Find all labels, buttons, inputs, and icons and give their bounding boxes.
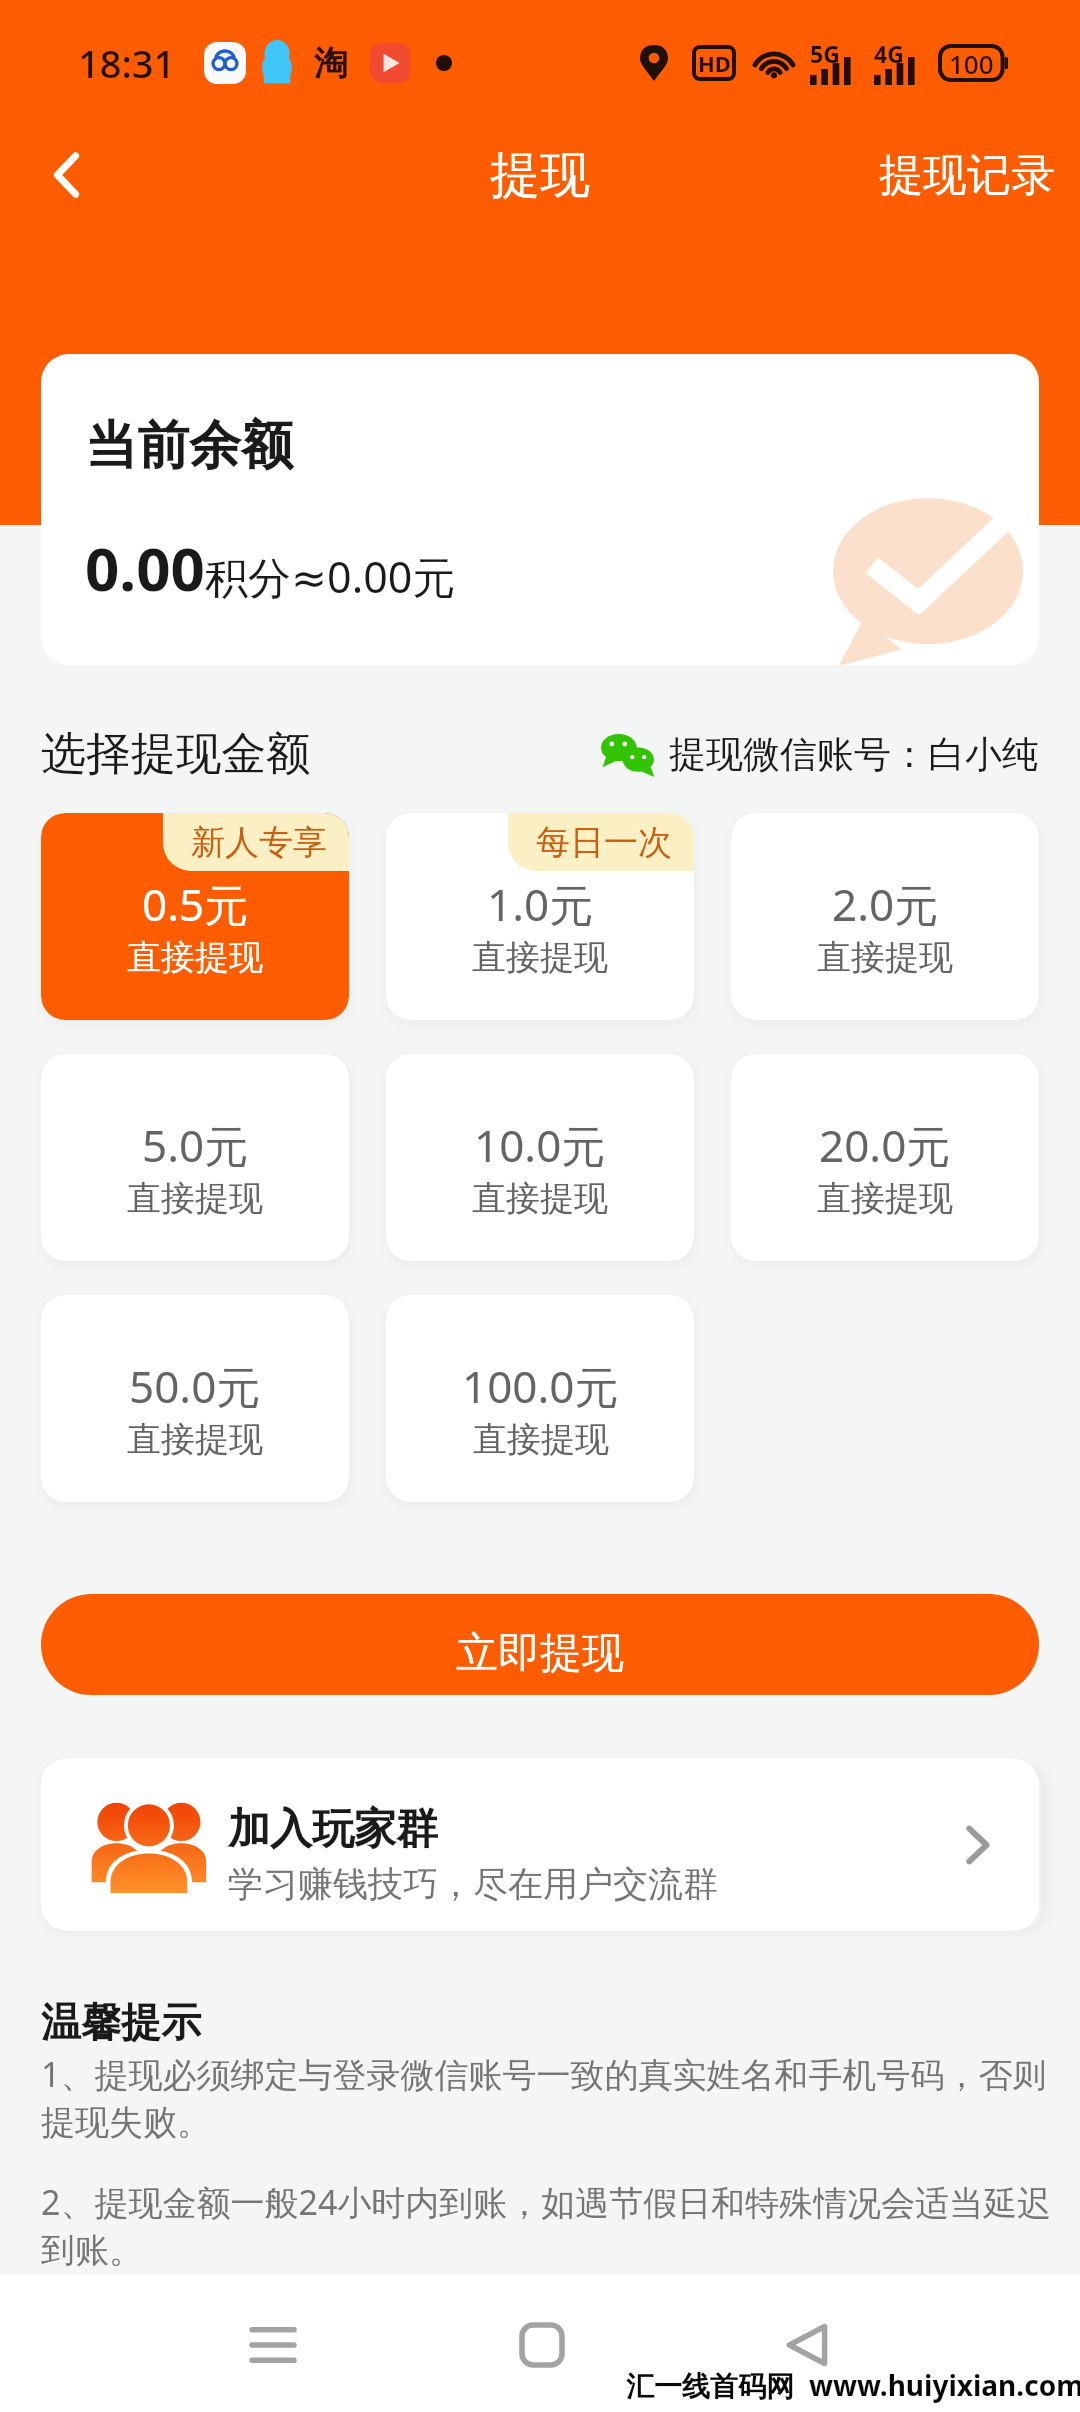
button[interactable]: 每日一次: [386, 813, 694, 1020]
staticText: 新人专享: [191, 821, 327, 864]
button[interactable]: 10.0元: [386, 1054, 694, 1261]
staticText: www.huiyixian.com: [809, 2366, 1080, 2404]
button[interactable]: 50.0元: [41, 1295, 349, 1502]
button[interactable]: 新人专享: [41, 813, 349, 1020]
staticText: 10.0元: [474, 1115, 606, 1175]
staticText: 立即提现: [456, 1627, 624, 1680]
staticText: 5G: [810, 38, 840, 69]
staticText: 提现微信账号：白小纯: [669, 731, 1039, 778]
staticText: 100: [949, 46, 994, 80]
staticText: 1、提现必须绑定与登录微信账号一致的真实姓名和手机号码，否则提现失败。: [41, 2051, 1076, 2144]
staticText: 淘: [314, 42, 348, 85]
staticText: 学习赚钱技巧，尽在用户交流群: [228, 1862, 718, 1906]
staticText: 提现记录: [879, 148, 1055, 203]
staticText: 2.0元: [832, 874, 939, 934]
staticText: 50.0元: [129, 1356, 261, 1416]
staticText: 18:31: [78, 37, 176, 89]
staticText: 直接提现: [127, 1177, 263, 1220]
staticText: 100.0元: [462, 1356, 619, 1416]
staticText: 汇一线首码网: [626, 2369, 794, 2404]
button[interactable]: Back: [26, 135, 106, 215]
staticText: 直接提现: [817, 936, 953, 979]
staticText: 2、提现金额一般24小时内到账，如遇节假日和特殊情况会适当延迟到账。: [41, 2179, 1076, 2272]
staticText: 提现: [490, 144, 590, 207]
staticText: 加入玩家群: [228, 1803, 438, 1856]
staticText: 选择提现金额: [41, 726, 311, 783]
staticText: 0.5元: [142, 874, 249, 934]
staticText: 直接提现: [472, 936, 608, 979]
staticText: 直接提现: [127, 1418, 263, 1461]
button[interactable]: 100.0元: [386, 1295, 694, 1502]
staticText: 4G: [874, 38, 904, 69]
staticText: 0.00: [85, 527, 205, 609]
button[interactable]: 加入玩家群: [41, 1758, 1039, 1931]
button[interactable]: 20.0元: [731, 1054, 1039, 1261]
staticText: 温馨提示: [41, 1997, 201, 2047]
staticText: 直接提现: [817, 1177, 953, 1220]
button[interactable]: 5.0元: [41, 1054, 349, 1261]
staticText: 1.0元: [487, 874, 594, 934]
button[interactable]: 提现记录: [845, 134, 1080, 217]
staticText: 20.0元: [819, 1115, 951, 1175]
button[interactable]: Back: [763, 2301, 851, 2389]
button[interactable]: Home: [498, 2301, 586, 2389]
staticText: 5.0元: [142, 1115, 249, 1175]
staticText: 积分≈0.00元: [205, 547, 456, 606]
button[interactable]: 2.0元: [731, 813, 1039, 1020]
button[interactable]: 立即提现: [41, 1594, 1039, 1695]
staticText: 直接提现: [473, 1418, 609, 1461]
staticText: 当前余额: [85, 413, 293, 479]
staticText: 直接提现: [127, 936, 263, 979]
staticText: 直接提现: [472, 1177, 608, 1220]
staticText: 每日一次: [536, 821, 672, 864]
staticText: HD: [698, 48, 731, 78]
button[interactable]: Recents: [229, 2301, 317, 2389]
